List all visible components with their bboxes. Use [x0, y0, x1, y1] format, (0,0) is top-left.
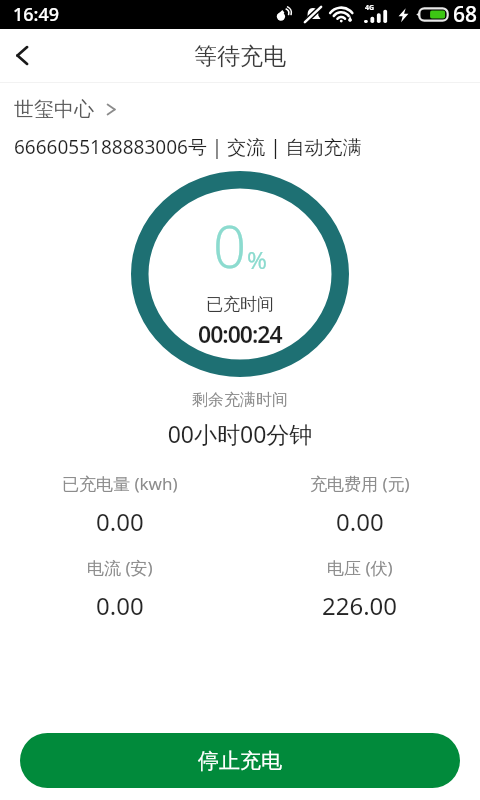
staticText: 0.00: [96, 589, 144, 622]
staticText: 6666055188883006号 | 交流 | 自动充满: [14, 134, 362, 160]
staticText: 0: [213, 206, 247, 285]
staticText: 00小时00分钟: [0, 418, 480, 449]
staticText: 充电费用 (元): [310, 472, 410, 495]
staticText: 已充时间: [206, 294, 274, 315]
staticText: %: [247, 243, 267, 276]
staticText: 226.00: [322, 589, 398, 622]
staticText: 等待充电: [194, 42, 286, 71]
staticText: 4G: [365, 3, 375, 13]
staticText: 电压 (伏): [327, 556, 393, 579]
staticText: 16:49: [13, 2, 60, 27]
staticText: 剩余充满时间: [0, 390, 480, 410]
staticText: 0.00: [336, 505, 384, 538]
button[interactable]: 世玺中心: [14, 97, 119, 122]
staticText: 已充电量 (kwh): [62, 472, 178, 495]
button[interactable]: Back: [0, 33, 44, 77]
staticText: 68: [453, 0, 478, 29]
staticText: 停止充电: [198, 748, 282, 774]
staticText: 世玺中心: [14, 97, 94, 122]
staticText: 电流 (安): [87, 556, 153, 579]
staticText: 0.00: [96, 505, 144, 538]
button[interactable]: 停止充电: [20, 733, 460, 788]
staticText: 00:00:24: [198, 318, 282, 349]
